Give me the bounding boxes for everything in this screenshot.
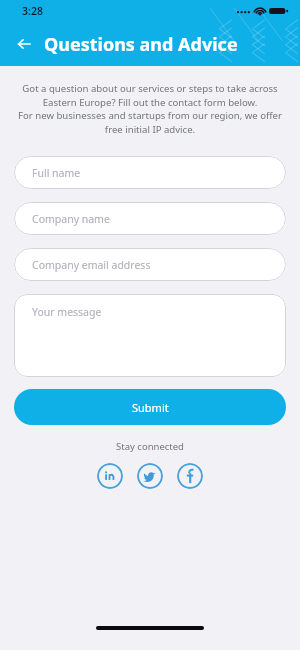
button[interactable]: Full name [14, 156, 286, 189]
staticText: Submit [132, 400, 169, 415]
button[interactable]: Twitter [137, 463, 163, 489]
button[interactable]: Submit [14, 389, 286, 425]
button[interactable]: Back [10, 30, 38, 58]
button[interactable]: Facebook [177, 463, 203, 489]
staticText: Full name [32, 166, 81, 180]
button[interactable]: LinkedIn [97, 463, 123, 489]
staticText: Got a question about our services or ste… [14, 82, 286, 109]
staticText: Your message [32, 305, 102, 319]
staticText: Questions and Advice [44, 32, 238, 57]
staticText: For new businesses and startups from our… [14, 109, 286, 136]
staticText: Company name [32, 212, 110, 226]
staticText: Stay connected [0, 440, 300, 453]
staticText: Company email address [32, 258, 151, 272]
button[interactable]: Company email address [14, 248, 286, 281]
staticText: 3:28 [22, 4, 43, 18]
button[interactable]: Your message [14, 294, 286, 377]
button[interactable]: Company name [14, 202, 286, 235]
